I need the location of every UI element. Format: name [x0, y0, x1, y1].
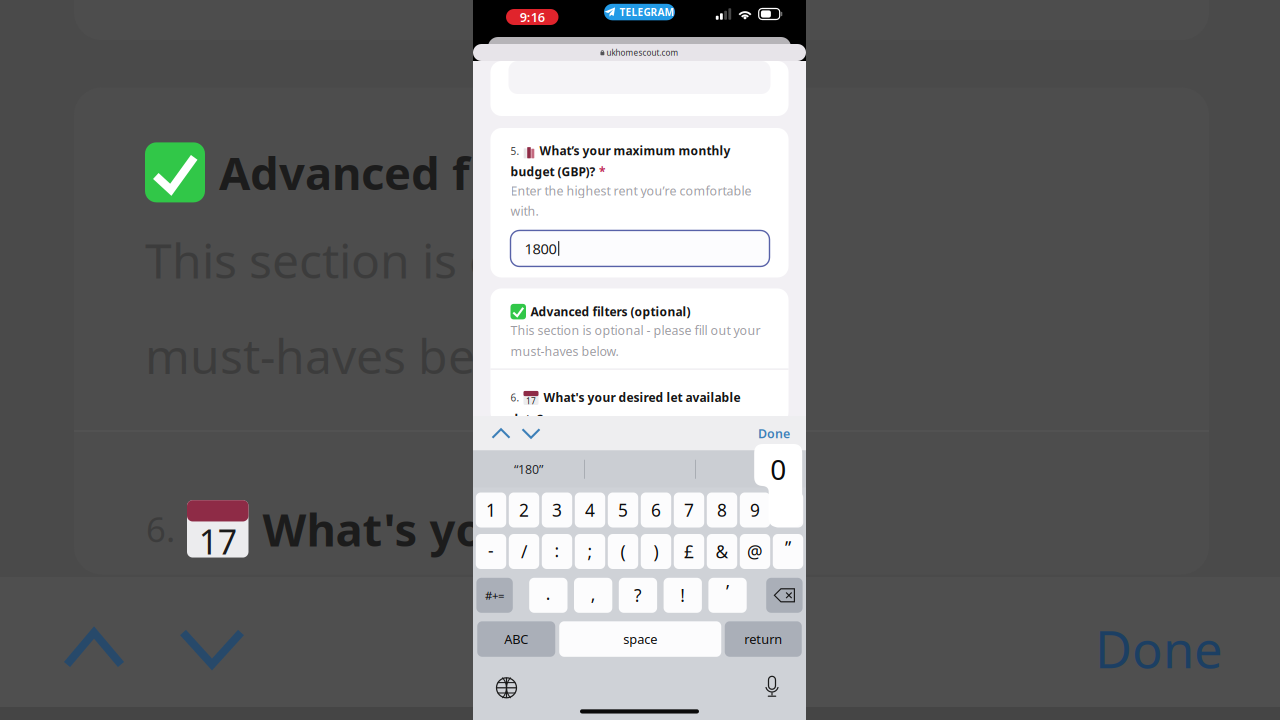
staticText: 2 [519, 498, 529, 522]
button[interactable]: Switch keyboard [491, 675, 521, 701]
staticText: budget (GBP)? [510, 163, 595, 180]
staticText: & [715, 540, 728, 563]
staticText: date? [146, 586, 271, 647]
staticText: space [623, 630, 657, 648]
button[interactable]: space [559, 621, 721, 657]
button[interactable]: 9 [740, 492, 770, 527]
staticText: with. [510, 203, 538, 219]
staticText: ABC [504, 630, 528, 648]
staticText: 6. [510, 391, 519, 404]
staticText: This section is optional - please fill o… [510, 322, 760, 339]
staticText: #+= [485, 588, 504, 603]
button[interactable]: “180” [473, 451, 584, 487]
staticText: . [546, 581, 551, 605]
staticText: 17 [526, 395, 536, 407]
staticText: - [488, 539, 494, 562]
button[interactable]: Dictate [757, 675, 787, 701]
staticText: 7 [684, 498, 694, 522]
button[interactable]: Delete [766, 578, 803, 613]
button[interactable]: , [574, 578, 612, 613]
button[interactable]: - [476, 534, 506, 569]
staticText: 6 [651, 498, 661, 522]
staticText: @ [747, 540, 763, 563]
button[interactable]: & [707, 534, 737, 569]
staticText: 0 [770, 450, 786, 488]
button[interactable]: return [725, 621, 802, 657]
staticText: must-haves be [145, 323, 475, 388]
button[interactable]: 7 [674, 492, 704, 527]
staticText: Done [758, 425, 790, 442]
staticText: 4 [585, 498, 595, 522]
staticText: Advanced f [219, 141, 470, 203]
staticText: What's your desired let available [543, 389, 740, 405]
button[interactable]: ’ [708, 578, 747, 613]
button[interactable]: ( [608, 534, 638, 569]
staticText: 9:16 [520, 8, 545, 26]
button[interactable]: ) [641, 534, 671, 569]
staticText: ( [620, 540, 625, 563]
staticText: 5. [510, 144, 519, 158]
staticText: ukhomescout.com [607, 47, 679, 58]
staticText: £ [684, 540, 694, 563]
staticText: 1 [486, 498, 496, 522]
button[interactable]: 8 [707, 492, 737, 527]
staticText: 8 [717, 498, 727, 522]
button[interactable]: ; [575, 534, 605, 569]
button[interactable]: 0 [773, 492, 803, 527]
button[interactable]: ABC [477, 621, 555, 657]
staticText: 17 [199, 518, 237, 564]
staticText: What’s your maximum monthly [539, 142, 730, 159]
button[interactable]: Previous field [486, 416, 516, 451]
button[interactable]: 6 [641, 492, 671, 527]
staticText: ? [634, 583, 642, 607]
staticText: This section is o [145, 227, 498, 293]
staticText: / [521, 540, 527, 563]
button[interactable]: Done [758, 416, 806, 451]
staticText: 6. [146, 505, 175, 552]
button[interactable]: . [529, 578, 567, 613]
staticText: , [591, 582, 596, 606]
staticText: Advanced filters (optional) [530, 303, 690, 320]
button[interactable]: ! [664, 578, 702, 613]
staticText: : [554, 539, 559, 562]
button[interactable]: ? [619, 578, 657, 613]
button[interactable]: 3 [542, 492, 572, 527]
button[interactable]: £ [674, 534, 704, 569]
button[interactable]: 1 [476, 492, 506, 527]
staticText: 1800 [524, 238, 556, 258]
button[interactable]: 2 [509, 492, 539, 527]
staticText: “180” [514, 461, 543, 478]
staticText: return [744, 630, 782, 648]
staticText: 5 [618, 498, 628, 522]
staticText: TELEGRAM [619, 5, 674, 19]
button[interactable]: Next field [516, 416, 546, 451]
staticText: What's yo [262, 498, 483, 560]
button[interactable]: 5 [608, 492, 638, 527]
button[interactable]: ” [773, 534, 803, 569]
staticText: ; [587, 539, 592, 563]
staticText: ” [785, 536, 791, 559]
button[interactable]: @ [740, 534, 770, 569]
button[interactable]: 4 [575, 492, 605, 527]
staticText: ! [680, 583, 685, 607]
staticText: * [599, 163, 606, 180]
button[interactable]: #+= [476, 578, 513, 613]
staticText: Enter the highest rent you’re comfortabl… [510, 182, 751, 199]
staticText: Done [1095, 614, 1223, 683]
staticText: must-haves below. [510, 343, 618, 360]
staticText: 9 [750, 498, 760, 522]
staticText: 3 [552, 498, 562, 522]
staticText: date? [510, 411, 543, 427]
button[interactable]: : [542, 534, 572, 569]
staticText: ’ [726, 579, 729, 603]
button[interactable]: / [509, 534, 539, 569]
staticText: ) [653, 540, 658, 563]
